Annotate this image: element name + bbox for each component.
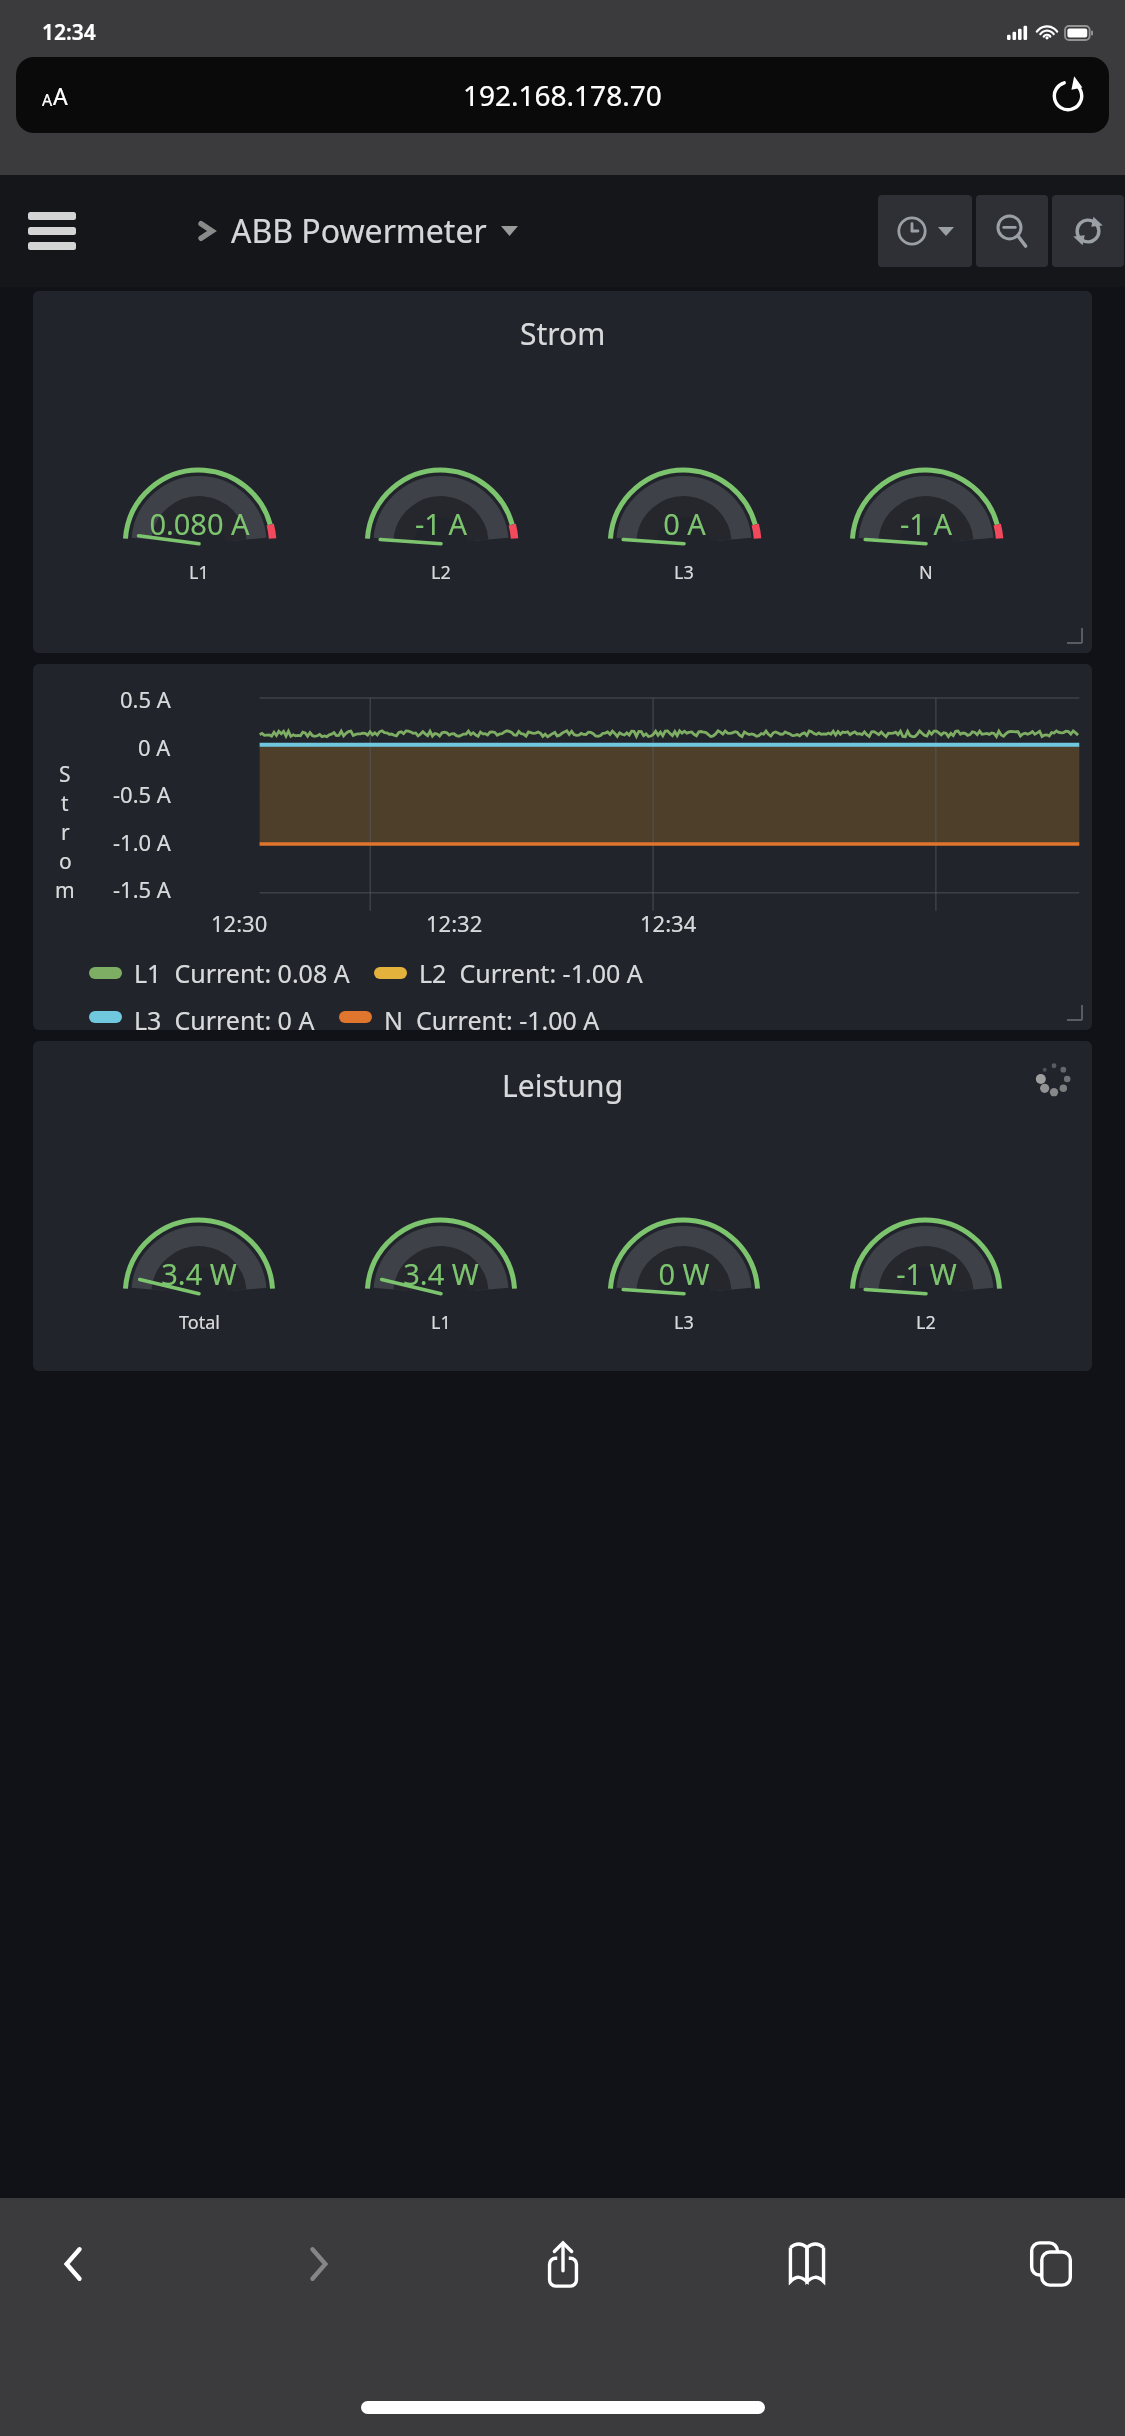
- button[interactable]: Page settings: [42, 80, 68, 111]
- staticText: L3: [674, 560, 694, 585]
- button[interactable]: 0 W: [608, 1187, 760, 1335]
- button[interactable]: 0.5 A: [33, 664, 1092, 1030]
- staticText: L1: [431, 1310, 451, 1335]
- staticText: 12:30: [211, 908, 268, 938]
- staticText: r: [61, 818, 70, 847]
- button[interactable]: ABB Powermeter: [198, 209, 518, 253]
- staticText: L1: [189, 560, 209, 585]
- button[interactable]: Tabs: [1013, 2226, 1089, 2302]
- staticText: 12:32: [426, 908, 483, 938]
- staticText: m: [55, 876, 75, 905]
- staticText: L3 Current: 0 A: [134, 1003, 315, 1030]
- staticText: -1.0 A: [113, 827, 171, 857]
- staticText: t: [61, 789, 69, 818]
- button[interactable]: L3 Current: 0 A: [89, 1003, 315, 1030]
- staticText: -1 A: [900, 504, 952, 543]
- button[interactable]: Refresh: [1052, 195, 1124, 267]
- staticText: L2 Current: -1.00 A: [419, 956, 643, 990]
- button[interactable]: Forward: [280, 2226, 356, 2302]
- staticText: ABB Powermeter: [231, 209, 487, 253]
- staticText: -0.5 A: [113, 779, 171, 809]
- button[interactable]: 0.080 A: [123, 437, 275, 585]
- staticText: o: [59, 847, 72, 876]
- staticText: A: [42, 89, 53, 111]
- button[interactable]: N Current: -1.00 A: [339, 1003, 600, 1030]
- button[interactable]: Bookmarks: [769, 2226, 845, 2302]
- button[interactable]: Time range: [878, 195, 972, 267]
- button[interactable]: Page settings: [16, 57, 1109, 133]
- staticText: Strom: [520, 313, 606, 354]
- staticText: L2: [431, 560, 451, 585]
- staticText: -1.5 A: [113, 874, 171, 904]
- staticText: 0.5 A: [120, 684, 171, 714]
- staticText: L1 Current: 0.08 A: [134, 956, 350, 990]
- staticText: 12:34: [42, 18, 96, 47]
- staticText: N Current: -1.00 A: [384, 1003, 600, 1030]
- other: Loading: [1034, 1059, 1074, 1099]
- button[interactable]: Reload: [1049, 76, 1087, 114]
- staticText: S: [59, 760, 71, 789]
- button[interactable]: 0 A: [608, 437, 760, 585]
- staticText: 0 A: [663, 504, 706, 543]
- staticText: 12:34: [640, 908, 697, 938]
- staticText: A: [53, 80, 68, 111]
- staticText: 0 W: [658, 1254, 710, 1293]
- staticText: L2: [916, 1310, 936, 1335]
- button[interactable]: Menu: [20, 199, 84, 263]
- button[interactable]: 3.4 W: [365, 1187, 517, 1335]
- button[interactable]: L2 Current: -1.00 A: [374, 956, 643, 990]
- button[interactable]: L1 Current: 0.08 A: [89, 956, 350, 990]
- staticText: 192.168.178.70: [463, 76, 662, 114]
- button[interactable]: Back: [36, 2226, 112, 2302]
- staticText: 3.4 W: [403, 1254, 479, 1293]
- staticText: -1 W: [896, 1254, 957, 1293]
- button[interactable]: Share: [525, 2226, 601, 2302]
- staticText: 0 A: [138, 732, 171, 762]
- staticText: Total: [179, 1310, 220, 1335]
- button[interactable]: Leistung: [33, 1041, 1092, 1371]
- staticText: L3: [674, 1310, 694, 1335]
- staticText: Leistung: [502, 1065, 624, 1106]
- button[interactable]: -1 W: [850, 1187, 1002, 1335]
- button[interactable]: Zoom out: [976, 195, 1048, 267]
- button[interactable]: -1 A: [365, 437, 517, 585]
- button[interactable]: Strom: [33, 291, 1092, 653]
- button[interactable]: -1 A: [850, 437, 1002, 585]
- staticText: 3.4 W: [161, 1254, 237, 1293]
- staticText: N: [919, 560, 933, 585]
- button[interactable]: 3.4 W: [123, 1187, 275, 1335]
- staticText: 0.080 A: [149, 504, 250, 543]
- staticText: -1 A: [415, 504, 467, 543]
